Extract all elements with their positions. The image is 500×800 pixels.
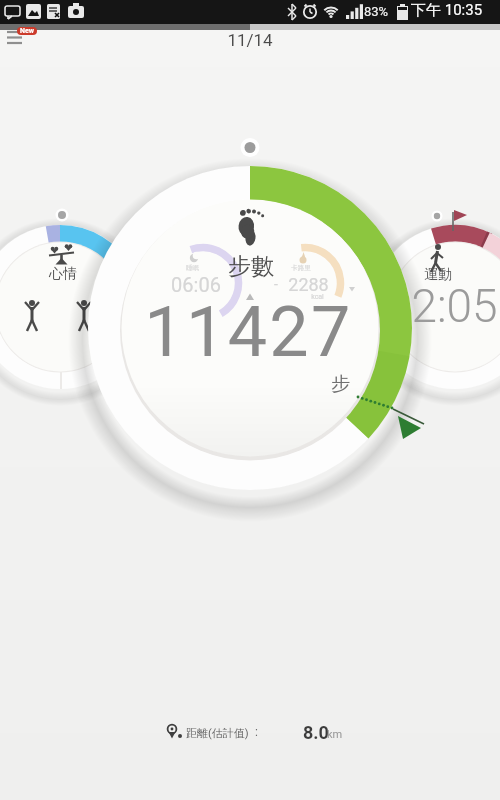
button[interactable]: 心情	[0, 234, 188, 314]
staticText: -	[274, 276, 278, 292]
button[interactable]	[4, 30, 40, 56]
button[interactable]: New	[20, 27, 34, 35]
button[interactable]: 11427	[123, 291, 373, 371]
staticText: 步	[331, 372, 350, 396]
button[interactable]: 2:05	[329, 266, 500, 346]
staticText: kcal	[311, 293, 324, 301]
button[interactable]: 8.0	[303, 722, 329, 743]
staticText: 11/14	[227, 30, 273, 50]
staticText: 下午 10:35	[411, 1, 483, 20]
staticText: km	[327, 728, 343, 741]
staticText: 卡路里	[291, 264, 311, 272]
staticText: 睡眠	[186, 264, 199, 272]
staticText: :	[255, 725, 258, 739]
staticText: 83%	[364, 4, 389, 19]
staticText: 運動	[424, 266, 452, 284]
staticText: 距離(估計值)	[186, 726, 249, 740]
staticText: 步數	[228, 252, 274, 281]
staticText: 11427	[144, 291, 353, 371]
button[interactable]	[160, 718, 350, 748]
staticText: 2288	[288, 274, 329, 295]
staticText: New	[20, 27, 34, 35]
staticText: 06:06	[171, 273, 221, 296]
staticText: 2:05	[411, 279, 498, 333]
staticText: 心情	[49, 265, 77, 283]
